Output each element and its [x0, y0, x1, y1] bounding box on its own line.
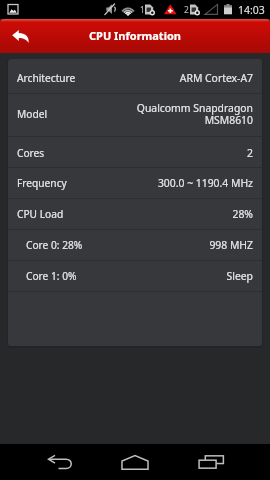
button[interactable]: CPU Load	[8, 199, 262, 229]
staticText: 28%	[232, 207, 253, 221]
button[interactable]: Back	[28, 444, 92, 480]
staticText: 2	[247, 146, 253, 160]
button[interactable]: Model	[8, 94, 262, 136]
button[interactable]: Cores	[8, 137, 262, 167]
button[interactable]: Architecture	[8, 59, 262, 93]
staticText: CPU Information	[89, 28, 181, 43]
staticText: Core 1: 0%	[26, 269, 77, 283]
staticText: Sleep	[226, 269, 253, 283]
staticText: Model	[17, 107, 48, 121]
staticText: 1	[140, 4, 145, 16]
button[interactable]: Core 0: 28%	[8, 230, 262, 260]
button[interactable]: Core 1: 0%	[8, 261, 262, 291]
staticText: 2	[184, 4, 189, 16]
button[interactable]: Recent apps	[179, 444, 243, 480]
staticText: 300.0 ~ 1190.4 MHz	[157, 176, 253, 190]
button[interactable]: Back	[0, 19, 40, 53]
staticText: 998 MHZ	[209, 238, 253, 252]
staticText: Core 0: 28%	[26, 238, 83, 252]
button[interactable]: Home	[103, 444, 167, 480]
staticText: 14:03	[238, 3, 265, 17]
staticText: ARM Cortex-A7	[179, 71, 253, 85]
staticText: CPU Load	[17, 207, 64, 221]
button[interactable]: Frequency	[8, 168, 262, 198]
staticText: Qualcomm Snapdragon MSM8610	[136, 101, 253, 127]
staticText: Cores	[17, 146, 45, 160]
staticText: Frequency	[17, 176, 67, 190]
staticText: Architecture	[17, 71, 76, 85]
